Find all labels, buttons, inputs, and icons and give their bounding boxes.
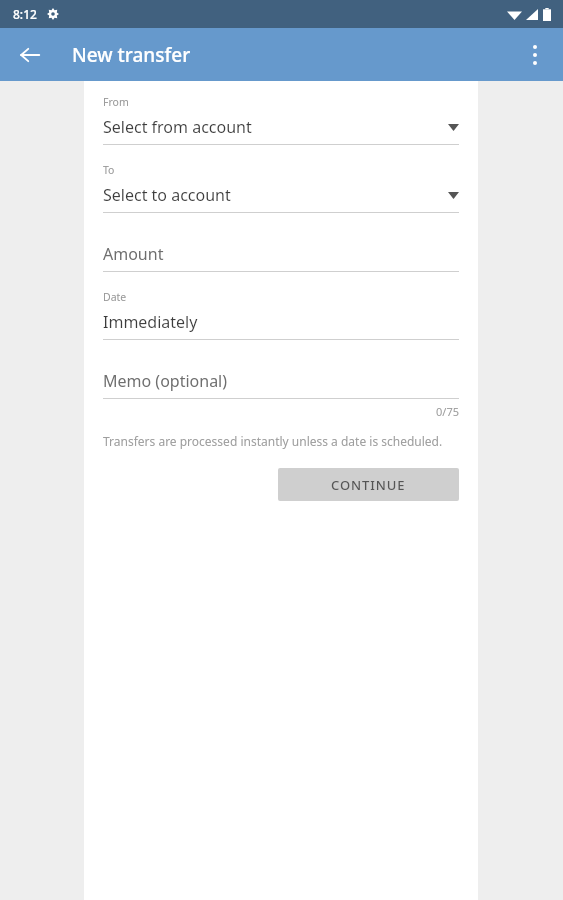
button[interactable]: Date bbox=[103, 290, 459, 340]
staticText: Transfers are processed instantly unless… bbox=[103, 433, 443, 449]
staticText: Select to account bbox=[103, 184, 448, 206]
staticText: 0/75 bbox=[103, 404, 459, 419]
button[interactable]: Back bbox=[8, 33, 52, 77]
button[interactable]: CONTINUE bbox=[278, 468, 459, 501]
button[interactable]: Amount bbox=[103, 243, 459, 272]
button[interactable]: To bbox=[103, 163, 459, 213]
button[interactable]: More options bbox=[513, 33, 557, 77]
staticText: Memo (optional) bbox=[103, 370, 228, 392]
button[interactable]: Memo (optional) bbox=[103, 370, 459, 399]
staticText: Amount bbox=[103, 243, 164, 265]
staticText: New transfer bbox=[72, 42, 191, 68]
staticText: Select from account bbox=[103, 116, 448, 138]
staticText: CONTINUE bbox=[331, 476, 406, 494]
staticText: From bbox=[103, 95, 129, 109]
button[interactable]: From bbox=[103, 95, 459, 145]
staticText: Date bbox=[103, 290, 127, 304]
staticText: 8:12 bbox=[13, 6, 37, 22]
staticText: Immediately bbox=[103, 311, 198, 333]
staticText: To bbox=[103, 163, 115, 177]
